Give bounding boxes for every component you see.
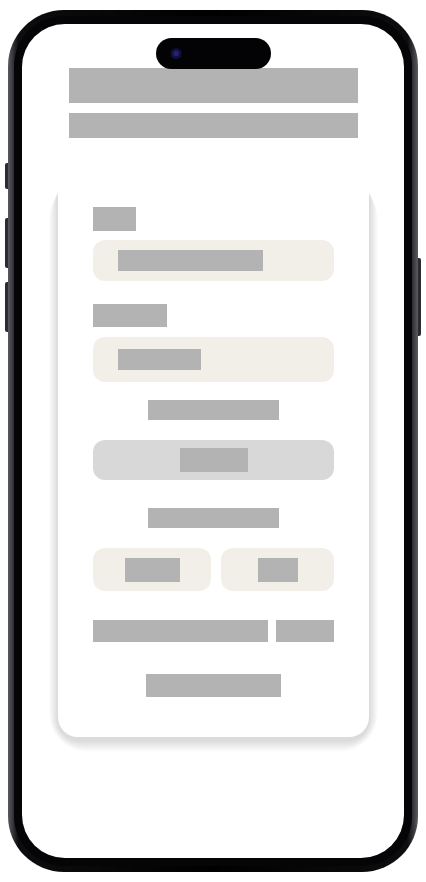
button[interactable]: Text field (93, 240, 334, 281)
button[interactable]: Option one (93, 548, 211, 591)
button[interactable]: Option two (221, 548, 334, 591)
button[interactable]: Submit (93, 440, 334, 480)
button[interactable]: Text field (93, 337, 334, 382)
